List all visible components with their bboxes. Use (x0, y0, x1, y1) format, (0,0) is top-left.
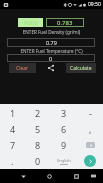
staticText: 0.783 (57, 19, 73, 27)
staticText: . (11, 155, 14, 167)
other: Enter (84, 155, 96, 167)
staticText: Clear (16, 65, 29, 72)
button[interactable]: 0.79 (7, 38, 95, 47)
button[interactable]: 2 (25, 104, 51, 121)
button[interactable]: Switch keyboard (87, 170, 99, 182)
button[interactable]: Clear (9, 63, 36, 73)
button[interactable]: - (77, 104, 103, 121)
staticText: 9 (61, 139, 67, 151)
staticText: 6 (61, 123, 67, 135)
button[interactable]: 3 (51, 104, 77, 121)
button[interactable]: 7 (0, 137, 25, 153)
button[interactable]: 9000 (18, 18, 43, 27)
staticText: 0.79 (46, 39, 57, 46)
button[interactable]: Back (16, 169, 30, 183)
staticText: 1 (10, 107, 16, 119)
staticText: ENTER Fuel Density (gr/ml) (0, 29, 103, 35)
staticText: 4 (10, 123, 16, 135)
staticText: 0 (35, 155, 41, 167)
button[interactable]: Share (45, 62, 57, 74)
button[interactable]: Calculate (66, 63, 96, 73)
staticText: 2 (35, 107, 41, 119)
button[interactable]: 5 (25, 121, 51, 137)
button[interactable]: 0 (25, 153, 51, 169)
button[interactable]: 1 (0, 104, 25, 121)
staticText: , (89, 123, 92, 135)
button[interactable]: 9 (51, 137, 77, 153)
button[interactable]: 8 (25, 137, 51, 153)
button[interactable]: Home (42, 169, 56, 183)
staticText: 9000 (24, 19, 38, 27)
staticText: 5 (35, 123, 41, 135)
button[interactable]: Recents (69, 169, 83, 183)
button[interactable]: Enter (77, 153, 103, 169)
button[interactable]: 0 (7, 54, 95, 62)
staticText: English (57, 158, 71, 163)
button[interactable]: English (51, 153, 77, 169)
staticText: Calculate (70, 65, 92, 72)
button[interactable]: 4 (0, 121, 25, 137)
staticText: 0 (49, 55, 53, 62)
staticText: 09:50 (88, 1, 101, 8)
button[interactable]: . (0, 153, 25, 169)
staticText: - (89, 107, 92, 119)
button[interactable]: 0.783 (46, 18, 84, 27)
staticText: 8 (35, 139, 41, 151)
button[interactable]: , (77, 121, 103, 137)
staticText: 7 (10, 139, 16, 151)
staticText: ENTER Fuel Temperature (°C) (0, 48, 103, 54)
other: Backspace (86, 142, 95, 148)
staticText: 3 (61, 107, 67, 119)
button[interactable]: Backspace (77, 137, 103, 153)
button[interactable]: 6 (51, 121, 77, 137)
